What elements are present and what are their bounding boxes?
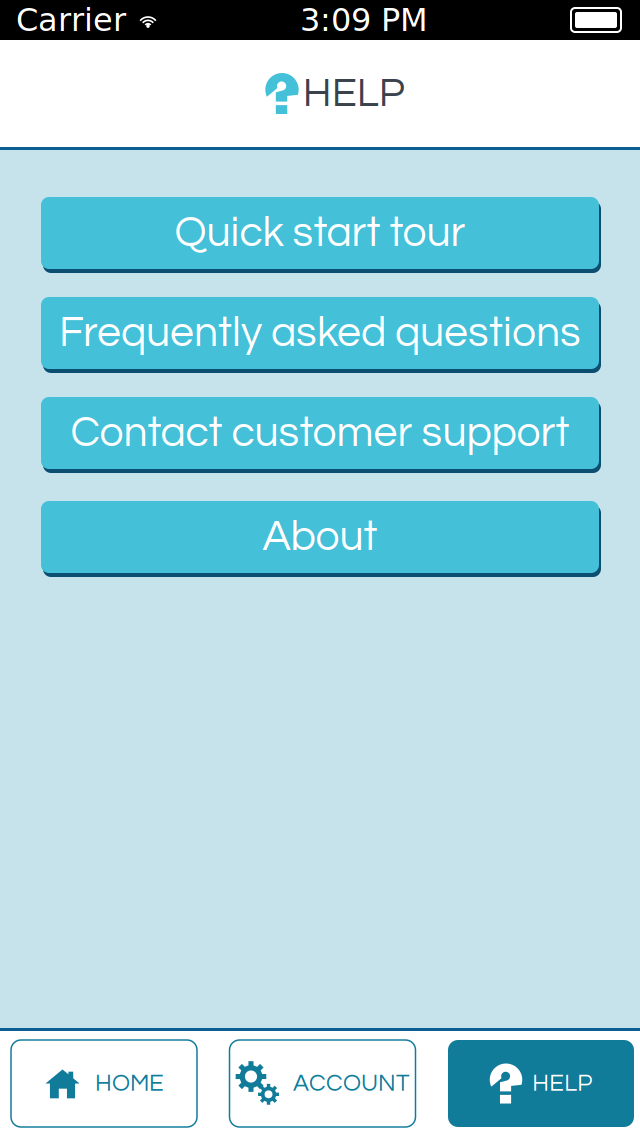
button[interactable]: Contact customer support [40,395,600,471]
staticText: Quick start tour [174,211,465,255]
button[interactable]: ACCOUNT [229,1040,415,1127]
staticText: HOME [95,1071,164,1096]
button[interactable]: Quick start tour [40,195,600,271]
staticText: HELP [303,72,405,115]
staticText: Carrier [16,1,126,39]
staticText: About [262,515,377,559]
button[interactable]: Frequently asked questions [40,295,600,371]
button[interactable]: HOME [11,1040,197,1127]
staticText: 3:09 PM [300,1,428,39]
staticText: Frequently asked questions [59,311,581,355]
staticText: ACCOUNT [293,1071,410,1096]
staticText: Contact customer support [70,411,569,455]
button[interactable]: About [40,499,600,575]
button[interactable]: HELP [448,1040,634,1127]
staticText: HELP [532,1071,592,1096]
